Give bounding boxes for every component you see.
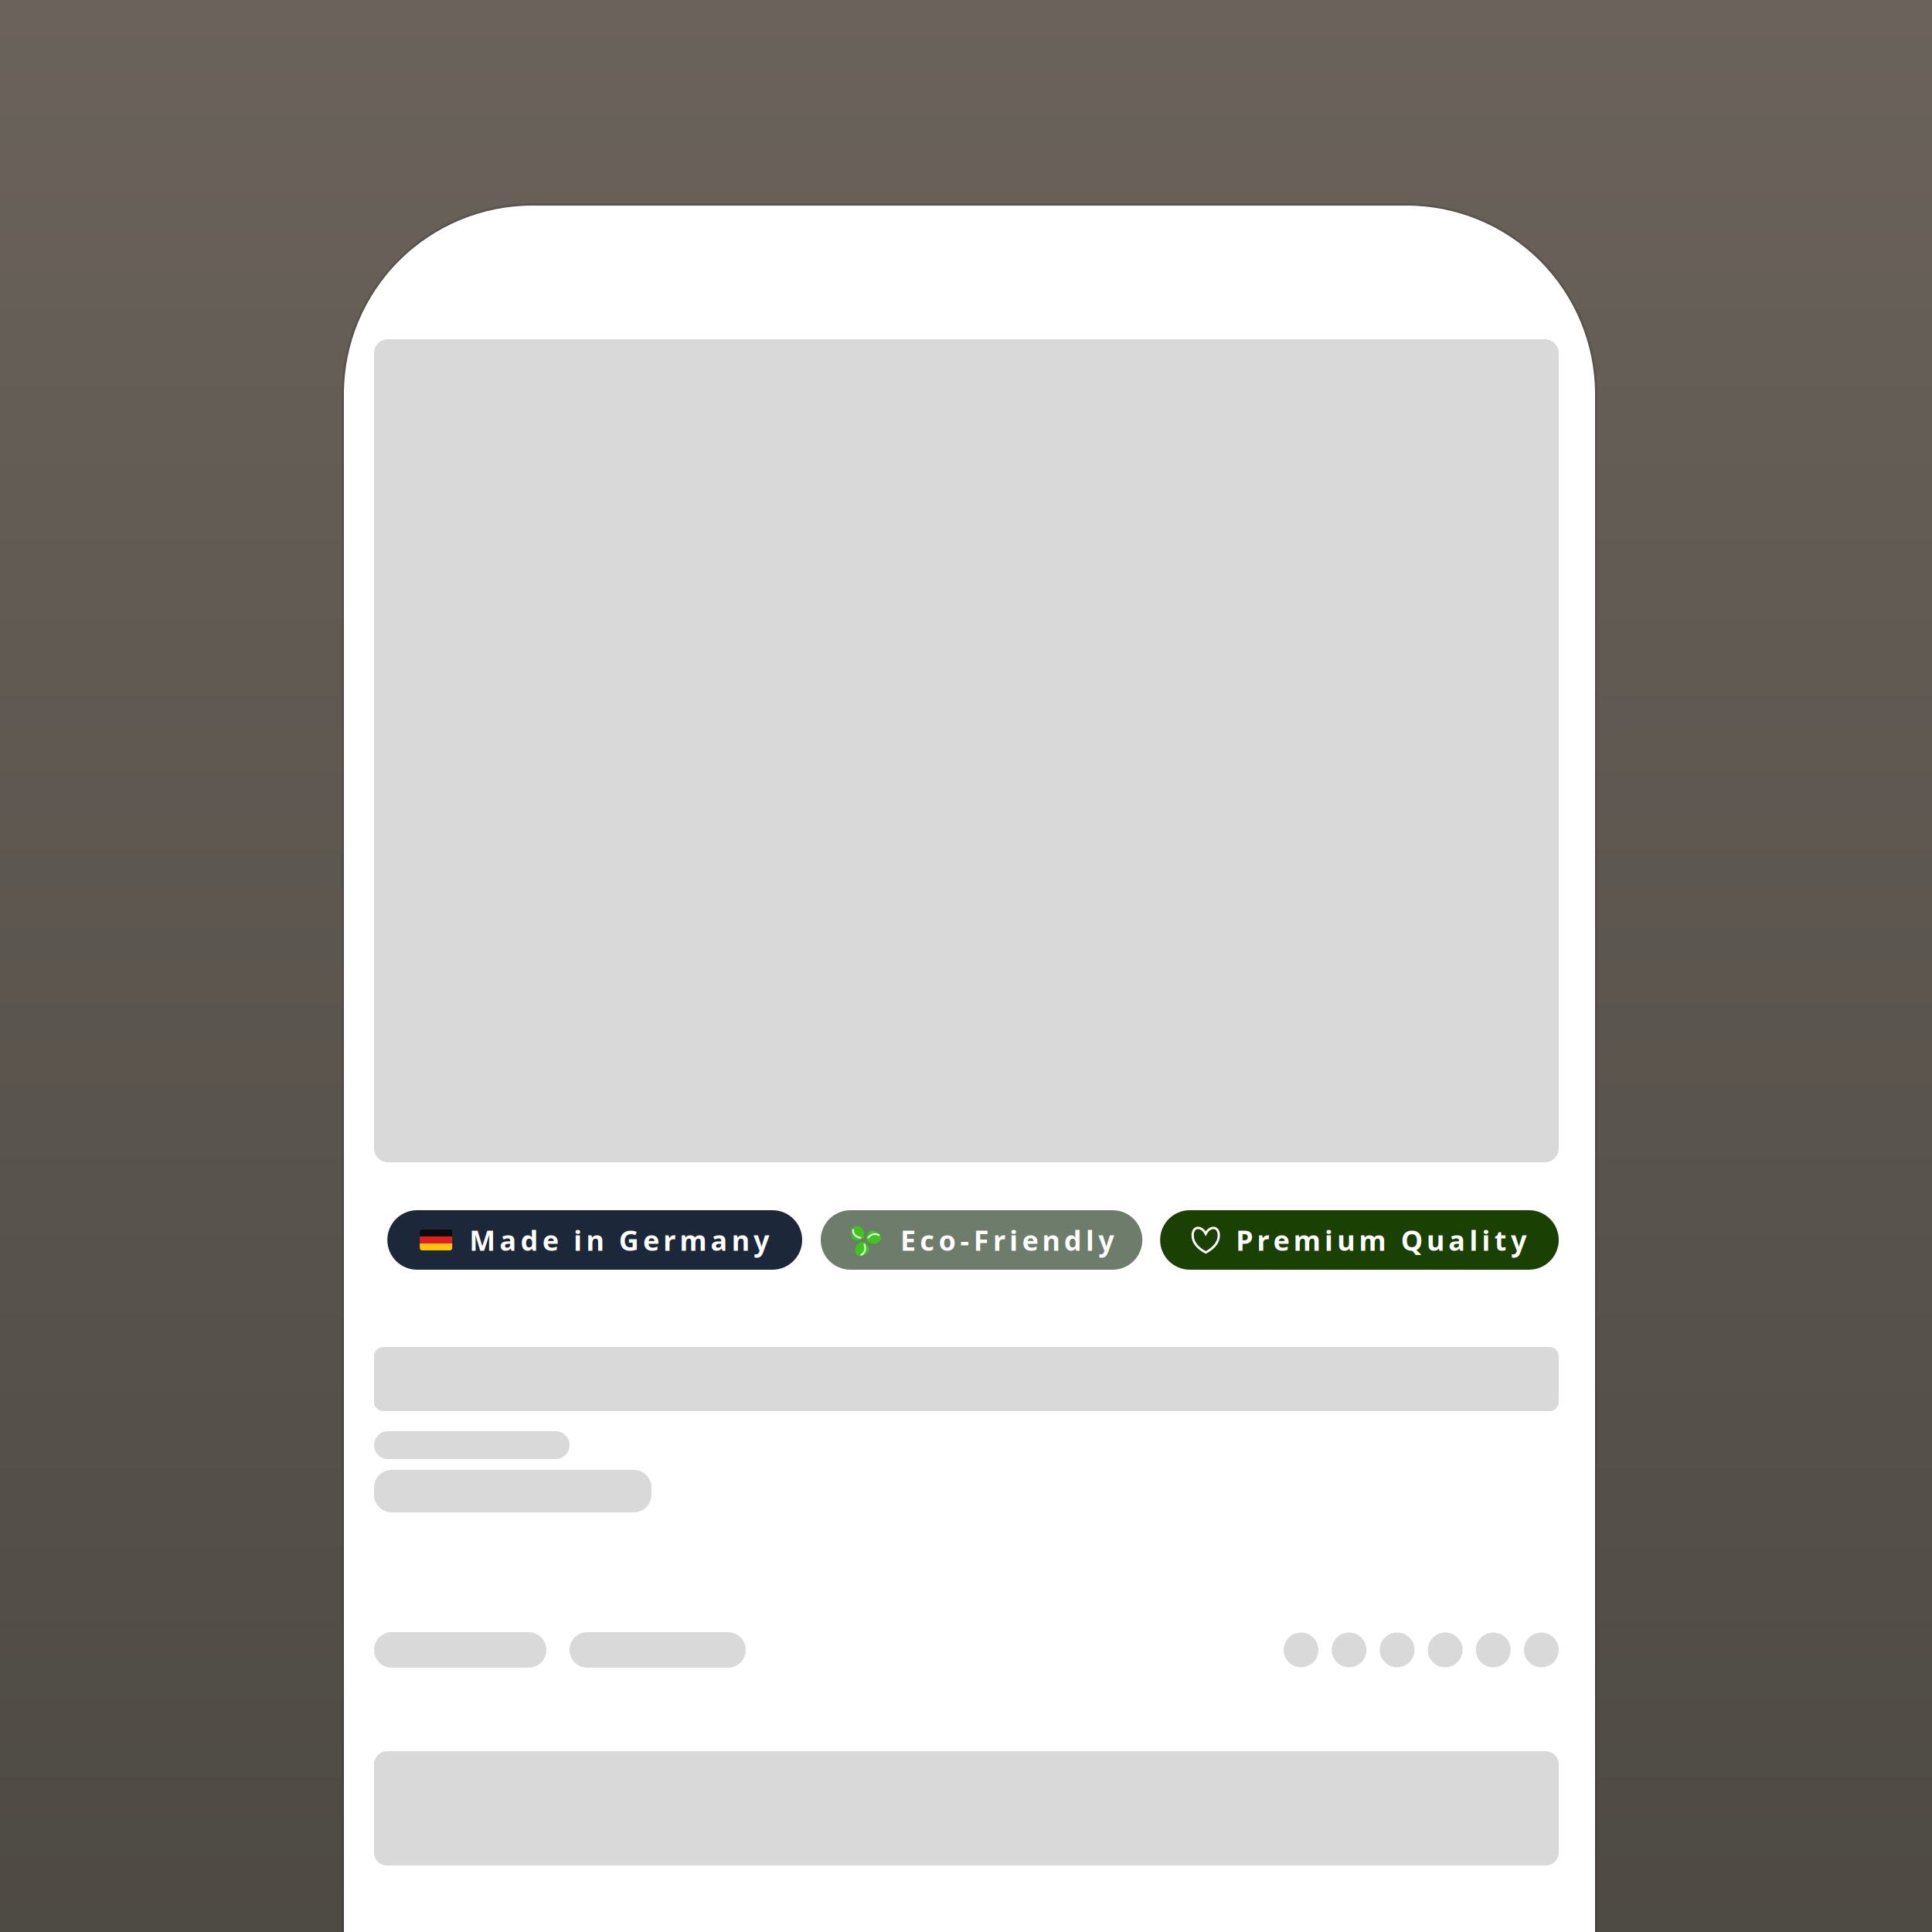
staticText: P bbox=[1236, 1221, 1253, 1258]
staticText: F bbox=[974, 1221, 989, 1258]
staticText: i bbox=[574, 1221, 582, 1258]
staticText: r bbox=[1257, 1221, 1269, 1258]
staticText: y bbox=[1098, 1221, 1115, 1258]
staticText: d bbox=[521, 1221, 538, 1258]
staticText: m bbox=[680, 1221, 707, 1258]
staticText: E bbox=[900, 1221, 916, 1258]
staticText: e bbox=[1273, 1221, 1289, 1258]
staticText: e bbox=[542, 1221, 559, 1258]
staticText: r bbox=[663, 1221, 676, 1258]
staticText: l bbox=[1086, 1221, 1094, 1258]
staticText: - bbox=[960, 1221, 970, 1258]
button[interactable]: M bbox=[387, 1210, 802, 1270]
button[interactable]: E bbox=[821, 1210, 1142, 1270]
staticText: i bbox=[1482, 1221, 1490, 1258]
staticText: e bbox=[1022, 1221, 1038, 1258]
staticText: d bbox=[1064, 1221, 1082, 1258]
button[interactable]: P bbox=[1160, 1210, 1559, 1270]
staticText: M bbox=[469, 1221, 496, 1258]
staticText: n bbox=[732, 1221, 749, 1258]
staticText: Q bbox=[1401, 1221, 1423, 1258]
staticText: m bbox=[1294, 1221, 1321, 1258]
staticText: o bbox=[938, 1221, 956, 1258]
staticText: y bbox=[1511, 1221, 1527, 1258]
staticText: y bbox=[753, 1221, 770, 1258]
staticText: u bbox=[1427, 1221, 1444, 1258]
staticText: u bbox=[1337, 1221, 1355, 1258]
staticText: n bbox=[586, 1221, 604, 1258]
staticText: a bbox=[711, 1221, 728, 1258]
staticText: c bbox=[920, 1221, 934, 1258]
staticText: a bbox=[1448, 1221, 1465, 1258]
staticText: a bbox=[500, 1221, 517, 1258]
staticText: m bbox=[1359, 1221, 1386, 1258]
staticText: i bbox=[1325, 1221, 1333, 1258]
staticText: i bbox=[1009, 1221, 1018, 1258]
staticText: G bbox=[619, 1221, 639, 1258]
staticText: l bbox=[1469, 1221, 1478, 1258]
staticText: n bbox=[1042, 1221, 1060, 1258]
staticText: r bbox=[993, 1221, 1005, 1258]
staticText: t bbox=[1494, 1221, 1507, 1258]
staticText: e bbox=[643, 1221, 659, 1258]
